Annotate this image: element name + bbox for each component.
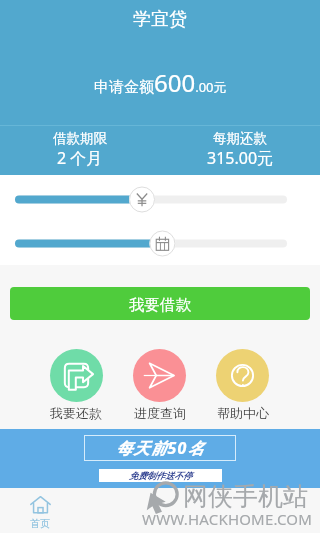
staticText: 申请金额600.00元 — [94, 66, 227, 99]
staticText: 每天前50名 — [116, 437, 205, 459]
staticText: 我要还款 — [50, 405, 102, 421]
button[interactable]: 每天前50名 — [0, 429, 320, 488]
staticText: 首页 — [30, 517, 50, 530]
button[interactable]: 进度查询 — [118, 349, 201, 421]
staticText: 网侠手机站 — [183, 481, 308, 512]
button[interactable]: Loan term slider — [15, 230, 287, 257]
staticText: WWW.HACKHOME.COM — [142, 509, 313, 529]
staticText: 借款期限 — [53, 130, 107, 147]
button[interactable]: 我要借款 — [10, 287, 310, 320]
staticText: 2 个月 — [57, 147, 103, 169]
staticText: 315.00元 — [207, 147, 274, 169]
button[interactable]: 帮助中心 — [201, 349, 284, 421]
button[interactable]: Loan amount slider — [15, 186, 287, 213]
staticText: 每期还款 — [213, 130, 267, 147]
staticText: 进度查询 — [134, 405, 186, 421]
button[interactable]: 我要还款 — [34, 349, 118, 421]
staticText: 学宜贷 — [133, 8, 187, 31]
button[interactable]: 首页 — [0, 488, 80, 533]
staticText: 我要借款 — [129, 295, 191, 315]
staticText: 免费制作送不停 — [129, 470, 192, 481]
staticText: 帮助中心 — [217, 405, 269, 421]
